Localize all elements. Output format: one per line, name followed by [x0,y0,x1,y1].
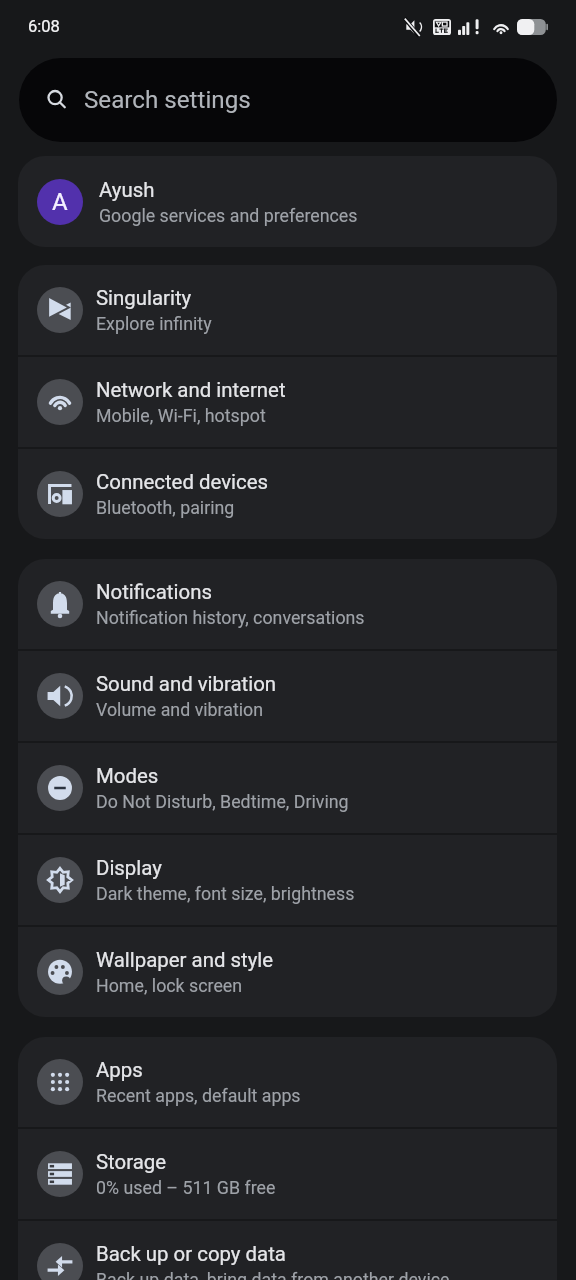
staticText: Wallpaper and style [96,948,274,972]
button[interactable]: Storage [18,1129,557,1219]
button[interactable]: Wallpaper and style [18,927,557,1017]
button[interactable]: Sound and vibration [18,651,557,741]
button[interactable]: A [18,156,557,247]
button[interactable]: Connected devices [18,449,557,539]
staticText: 6:08 [28,17,60,36]
staticText: Ayush [99,178,155,202]
staticText: Singularity [96,286,192,310]
staticText: Modes [96,764,159,788]
staticText: 0% used – 511 GB free [96,1177,276,1198]
staticText: Search settings [84,86,251,114]
staticText: Notification history, conversations [96,607,365,628]
staticText: Back up or copy data [96,1242,286,1266]
button[interactable]: Singularity [18,265,557,355]
staticText: Apps [96,1058,143,1082]
staticText: Display [96,856,162,880]
staticText: Notifications [96,580,212,604]
button[interactable]: Network and internet [18,357,557,447]
staticText: Home, lock screen [96,975,243,996]
staticText: Bluetooth, pairing [96,497,235,518]
staticText: Dark theme, font size, brightness [96,883,355,904]
staticText: Recent apps, default apps [96,1085,301,1106]
staticText: Google services and preferences [99,205,358,226]
staticText: Volume and vibration [96,699,264,720]
button[interactable]: Display [18,835,557,925]
staticText: A [52,188,68,216]
staticText: Storage [96,1150,167,1174]
button[interactable]: Modes [18,743,557,833]
staticText: Mobile, Wi-Fi, hotspot [96,405,266,426]
button[interactable]: Apps [18,1037,557,1127]
button[interactable]: Notifications [18,559,557,649]
staticText: Explore infinity [96,313,212,334]
staticText: Connected devices [96,470,268,494]
staticText: Do Not Disturb, Bedtime, Driving [96,791,349,812]
button[interactable]: Search settings [19,58,557,142]
button[interactable]: Back up or copy data [18,1221,557,1280]
staticText: Back up data, bring data from another de… [96,1269,450,1280]
staticText: Sound and vibration [96,672,277,696]
staticText: Network and internet [96,378,286,402]
